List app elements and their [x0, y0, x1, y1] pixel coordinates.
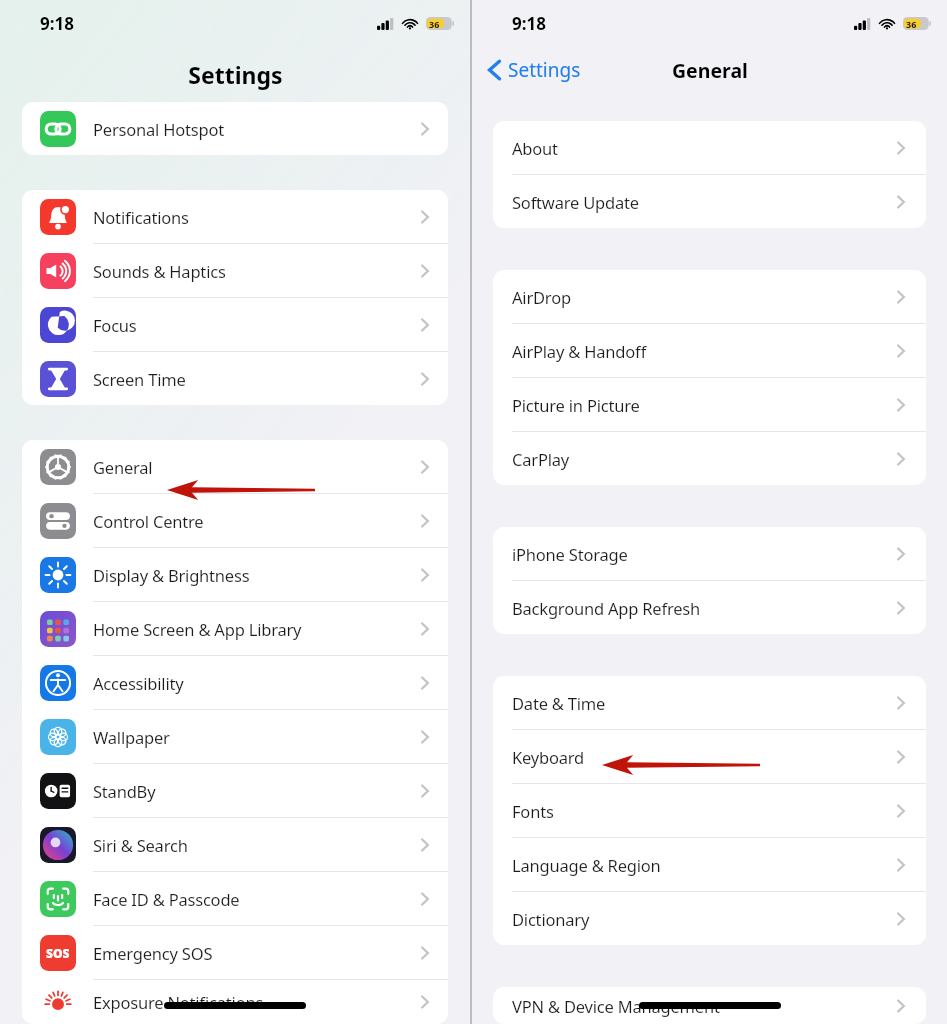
staticText: Keyboard: [512, 746, 892, 768]
button[interactable]: Sounds & Haptics: [22, 244, 448, 297]
staticText: Language & Region: [512, 854, 892, 876]
button[interactable]: Control Centre: [22, 494, 448, 547]
staticText: 36: [906, 18, 917, 30]
staticText: Home Screen & App Library: [93, 618, 416, 640]
button[interactable]: Wallpaper: [22, 710, 448, 763]
staticText: Notifications: [93, 206, 416, 228]
button[interactable]: Exposure Notifications: [22, 980, 448, 1024]
staticText: AirPlay & Handoff: [512, 340, 892, 362]
staticText: Sounds & Haptics: [93, 260, 416, 282]
button[interactable]: Language & Region: [493, 838, 926, 891]
staticText: SOS: [46, 945, 70, 961]
staticText: 9:18: [40, 12, 74, 35]
button[interactable]: Home Screen & App Library: [22, 602, 448, 655]
staticText: 36: [429, 18, 440, 30]
staticText: General: [93, 456, 416, 478]
staticText: VPN & Device Management: [512, 995, 892, 1017]
staticText: Control Centre: [93, 510, 416, 532]
button[interactable]: Face ID & Passcode: [22, 872, 448, 925]
button[interactable]: Picture in Picture: [493, 378, 926, 431]
button[interactable]: Software Update: [493, 175, 926, 228]
staticText: Fonts: [512, 800, 892, 822]
other: Back to Settings: [488, 59, 501, 81]
staticText: Emergency SOS: [93, 942, 416, 964]
staticText: Picture in Picture: [512, 394, 892, 416]
button[interactable]: StandBy: [22, 764, 448, 817]
button[interactable]: General: [22, 440, 448, 493]
staticText: Software Update: [512, 191, 892, 213]
staticText: Siri & Search: [93, 834, 416, 856]
staticText: iPhone Storage: [512, 543, 892, 565]
staticText: Personal Hotspot: [93, 118, 416, 140]
button[interactable]: Back to Settings: [482, 52, 587, 88]
button[interactable]: Keyboard: [493, 730, 926, 783]
staticText: Background App Refresh: [512, 597, 892, 619]
staticText: Display & Brightness: [93, 564, 416, 586]
staticText: Date & Time: [512, 692, 892, 714]
staticText: Focus: [93, 314, 416, 336]
staticText: Dictionary: [512, 908, 892, 930]
staticText: CarPlay: [512, 448, 892, 470]
button[interactable]: Date & Time: [493, 676, 926, 729]
staticText: Face ID & Passcode: [93, 888, 416, 910]
staticText: 9:18: [512, 12, 546, 35]
staticText: Screen Time: [93, 368, 416, 390]
button[interactable]: Notifications: [22, 190, 448, 243]
staticText: Wallpaper: [93, 726, 416, 748]
button[interactable]: Accessibility: [22, 656, 448, 709]
staticText: General: [672, 57, 748, 84]
button[interactable]: AirDrop: [493, 270, 926, 323]
button[interactable]: Siri & Search: [22, 818, 448, 871]
staticText: Exposure Notifications: [93, 991, 416, 1013]
staticText: Settings: [508, 57, 581, 83]
staticText: About: [512, 137, 892, 159]
button[interactable]: Background App Refresh: [493, 581, 926, 634]
button[interactable]: CarPlay: [493, 432, 926, 485]
button[interactable]: About: [493, 121, 926, 174]
staticText: Settings: [188, 59, 283, 90]
button[interactable]: VPN & Device Management: [493, 987, 926, 1024]
staticText: StandBy: [93, 780, 416, 802]
button[interactable]: Personal Hotspot: [22, 102, 448, 155]
staticText: AirDrop: [512, 286, 892, 308]
button[interactable]: SOS: [22, 926, 448, 979]
button[interactable]: AirPlay & Handoff: [493, 324, 926, 377]
button[interactable]: Dictionary: [493, 892, 926, 945]
button[interactable]: Display & Brightness: [22, 548, 448, 601]
button[interactable]: iPhone Storage: [493, 527, 926, 580]
button[interactable]: Fonts: [493, 784, 926, 837]
staticText: Accessibility: [93, 672, 416, 694]
button[interactable]: Screen Time: [22, 352, 448, 405]
button[interactable]: Focus: [22, 298, 448, 351]
